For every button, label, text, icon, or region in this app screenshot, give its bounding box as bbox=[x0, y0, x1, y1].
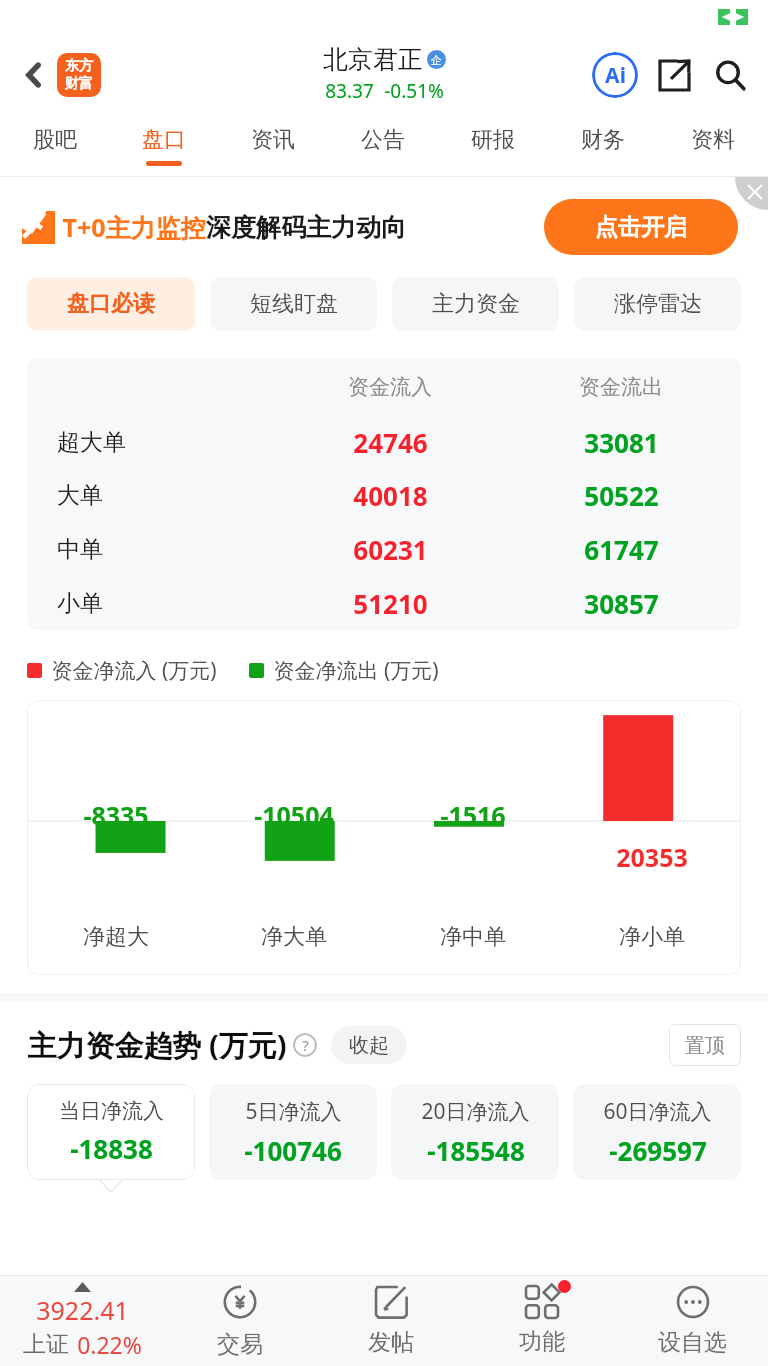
button[interactable]: Help bbox=[293, 1033, 317, 1057]
staticText: 83.37 bbox=[325, 78, 374, 104]
staticText: Ai bbox=[605, 61, 626, 90]
staticText: T+0主力监控 bbox=[62, 210, 206, 244]
button[interactable]: 盘口必读 bbox=[27, 277, 195, 331]
button[interactable]: 5日净流入 bbox=[209, 1084, 377, 1180]
staticText: 30857 bbox=[584, 586, 659, 621]
staticText: 0.22% bbox=[77, 1329, 142, 1360]
staticText: -1516 bbox=[440, 798, 506, 832]
staticText: -269597 bbox=[609, 1133, 707, 1168]
staticText: 资金净流出 (万元) bbox=[273, 656, 439, 685]
staticText: 上证 bbox=[23, 1330, 69, 1359]
button[interactable]: 财务 bbox=[548, 118, 658, 176]
button[interactable]: 主力资金 bbox=[392, 277, 559, 331]
button[interactable]: 当日净流入 bbox=[27, 1084, 195, 1180]
staticText: 小单 bbox=[57, 589, 103, 618]
staticText: 股吧 bbox=[33, 126, 77, 154]
staticText: -185548 bbox=[427, 1133, 525, 1168]
staticText: 40018 bbox=[353, 478, 428, 513]
staticText: 东方 bbox=[65, 57, 93, 75]
staticText: 资金流出 bbox=[579, 374, 663, 400]
staticText: 61747 bbox=[584, 532, 659, 567]
staticText: 资料 bbox=[691, 126, 735, 154]
staticText: 51210 bbox=[353, 586, 428, 621]
staticText: 设自选 bbox=[658, 1328, 727, 1357]
button[interactable]: 点击开启 bbox=[544, 199, 738, 255]
staticText: 北京君正 bbox=[323, 44, 423, 75]
staticText: 主力资金趋势 (万元) bbox=[27, 1025, 287, 1065]
staticText: 资讯 bbox=[251, 126, 295, 154]
staticText: 33081 bbox=[584, 425, 659, 460]
staticText: 公告 bbox=[361, 126, 405, 154]
button[interactable]: 60日净流入 bbox=[573, 1084, 741, 1180]
staticText: 24746 bbox=[353, 425, 428, 460]
button[interactable]: 资讯 bbox=[218, 118, 328, 176]
staticText: 发帖 bbox=[368, 1328, 414, 1357]
staticText: 资金流入 bbox=[348, 374, 432, 400]
button[interactable]: Back bbox=[10, 51, 58, 99]
button[interactable]: 短线盯盘 bbox=[210, 277, 377, 331]
staticText: 中单 bbox=[57, 535, 103, 564]
button[interactable]: 发帖 bbox=[315, 1276, 466, 1366]
staticText: -8335 bbox=[83, 798, 149, 832]
staticText: 净大单 bbox=[261, 923, 327, 951]
button[interactable]: 功能 bbox=[466, 1276, 617, 1366]
staticText: 大单 bbox=[57, 481, 103, 510]
staticText: 点击开启 bbox=[595, 213, 687, 242]
staticText: 20353 bbox=[616, 840, 688, 874]
staticText: 短线盯盘 bbox=[250, 290, 338, 318]
staticText: 60231 bbox=[353, 532, 428, 567]
button[interactable]: Close bbox=[735, 177, 768, 210]
staticText: -18838 bbox=[70, 1131, 153, 1166]
staticText: 盘口必读 bbox=[67, 290, 155, 318]
staticText: 3922.41 bbox=[36, 1293, 129, 1327]
button[interactable]: Search bbox=[706, 51, 754, 99]
button[interactable]: 盘口 bbox=[109, 118, 218, 176]
staticText: 当日净流入 bbox=[59, 1098, 164, 1124]
button[interactable]: AI bbox=[590, 50, 640, 100]
staticText: 置顶 bbox=[685, 1033, 725, 1058]
staticText: 财务 bbox=[581, 126, 625, 154]
staticText: 企 bbox=[431, 53, 442, 67]
button[interactable]: East Money bbox=[57, 53, 101, 97]
button[interactable]: 收起 bbox=[331, 1026, 407, 1064]
button[interactable]: 公告 bbox=[328, 118, 438, 176]
staticText: 20日净流入 bbox=[421, 1097, 530, 1126]
staticText: 净小单 bbox=[619, 923, 685, 951]
button[interactable]: 研报 bbox=[438, 118, 548, 176]
button[interactable]: 设自选 bbox=[617, 1276, 768, 1366]
staticText: 财富 bbox=[65, 75, 93, 93]
button[interactable]: 交易 bbox=[164, 1276, 315, 1366]
staticText: 60日净流入 bbox=[603, 1097, 712, 1126]
button[interactable]: 股吧 bbox=[0, 118, 109, 176]
staticText: 深度解码主力动向 bbox=[206, 212, 406, 243]
button[interactable]: 20日净流入 bbox=[391, 1084, 559, 1180]
staticText: 资金净流入 (万元) bbox=[51, 656, 217, 685]
staticText: 功能 bbox=[519, 1327, 565, 1356]
button[interactable]: 涨停雷达 bbox=[574, 277, 741, 331]
staticText: 收起 bbox=[349, 1033, 389, 1058]
staticText: ? bbox=[302, 1035, 309, 1055]
staticText: 交易 bbox=[217, 1330, 263, 1359]
staticText: 盘口 bbox=[142, 126, 186, 154]
staticText: -100746 bbox=[244, 1133, 342, 1168]
staticText: 主力资金 bbox=[432, 290, 520, 318]
button[interactable]: 置顶 bbox=[669, 1024, 741, 1066]
button[interactable]: 3922.41 bbox=[0, 1276, 164, 1366]
staticText: 涨停雷达 bbox=[614, 290, 702, 318]
staticText: 净中单 bbox=[440, 923, 506, 951]
staticText: 净超大 bbox=[83, 923, 149, 951]
button[interactable]: 资料 bbox=[658, 118, 768, 176]
staticText: 50522 bbox=[584, 478, 659, 513]
staticText: -10504 bbox=[254, 798, 334, 832]
button[interactable]: Share bbox=[650, 51, 698, 99]
staticText: -0.51% bbox=[384, 78, 444, 104]
staticText: 研报 bbox=[471, 126, 515, 154]
staticText: 超大单 bbox=[57, 428, 126, 457]
staticText: 5日净流入 bbox=[245, 1097, 342, 1126]
